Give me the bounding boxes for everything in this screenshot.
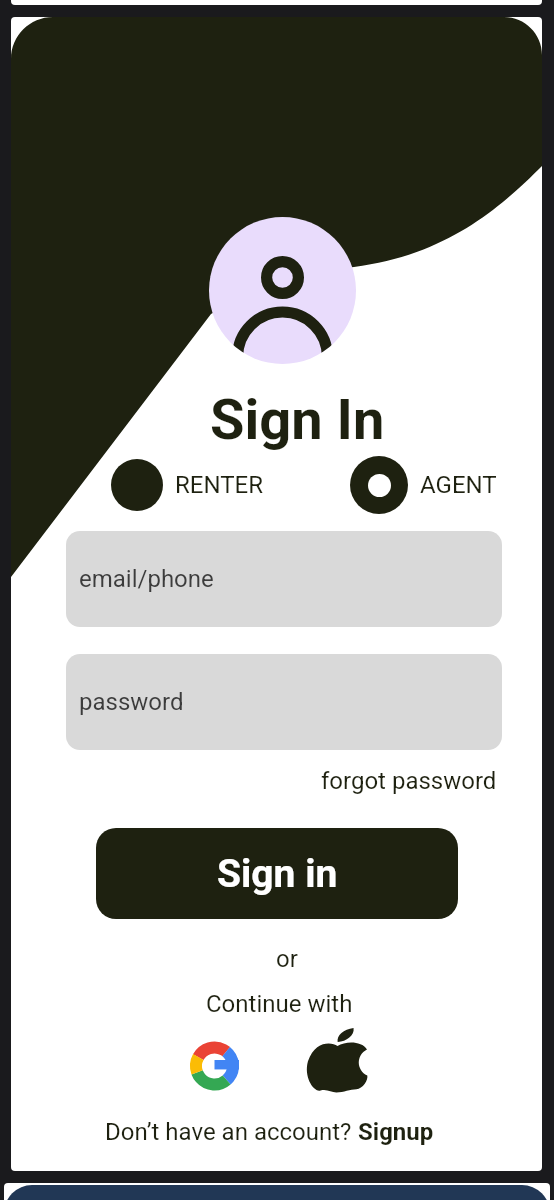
button[interactable]: forgot password xyxy=(11,17,187,45)
button[interactable]: Signup xyxy=(358,1118,434,1146)
button[interactable]: Continue with Apple xyxy=(292,1017,382,1107)
staticText: Sign In xyxy=(210,387,385,453)
staticText: email/phone xyxy=(79,565,214,593)
button[interactable]: email/phone xyxy=(66,531,502,627)
button[interactable]: Agent xyxy=(350,456,408,514)
staticText: Sign in xyxy=(217,851,338,897)
button[interactable]: Renter xyxy=(111,459,163,511)
staticText: Don’t have an account? xyxy=(105,1118,358,1146)
button[interactable]: AGENT xyxy=(11,17,88,45)
button[interactable]: RENTER xyxy=(11,17,99,45)
button[interactable]: Continue with Google xyxy=(170,1022,258,1110)
button[interactable]: Sign in xyxy=(96,828,458,919)
staticText: or xyxy=(276,945,298,973)
staticText: Continue with xyxy=(206,990,353,1018)
button[interactable]: password xyxy=(66,654,502,750)
staticText: password xyxy=(79,688,184,716)
